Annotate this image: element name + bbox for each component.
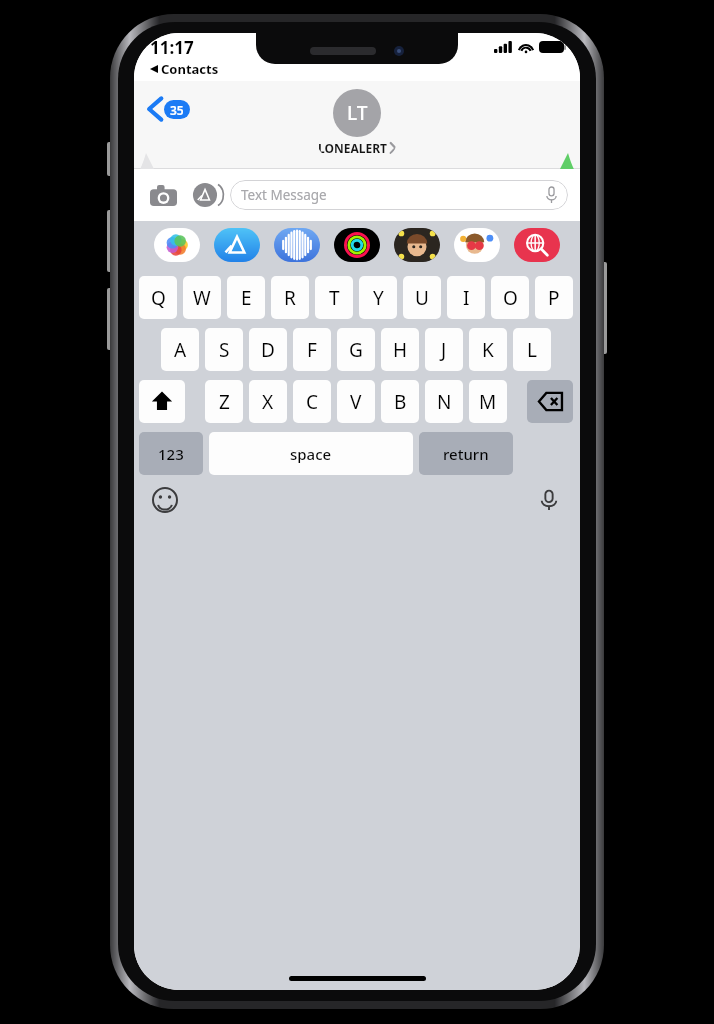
button[interactable]: C [293, 380, 331, 423]
staticText: 123 [158, 444, 184, 464]
staticText: G [349, 337, 363, 363]
staticText: Y [373, 285, 384, 311]
button[interactable]: App Store [214, 228, 260, 262]
button[interactable]: V [337, 380, 375, 423]
button[interactable]: S [205, 328, 243, 371]
staticText: N [437, 389, 452, 415]
staticText: H [393, 337, 408, 363]
button[interactable]: Back to conversations, 35 unread [146, 95, 192, 123]
button[interactable]: G [337, 328, 375, 371]
staticText: U [415, 285, 429, 311]
button[interactable]: K [469, 328, 507, 371]
button[interactable]: U [403, 276, 441, 319]
staticText: 11:17 [150, 36, 194, 59]
button[interactable]: LT [318, 89, 396, 156]
staticText: M [479, 389, 497, 415]
button[interactable]: Stickers [454, 228, 500, 262]
button[interactable]: return [419, 432, 513, 475]
staticText: 35 [170, 102, 184, 118]
button[interactable]: Shift [139, 380, 185, 423]
staticText: R [284, 285, 296, 311]
staticText: T [329, 285, 340, 311]
staticText: LONEALERT [318, 140, 387, 156]
button[interactable]: App Store [188, 178, 222, 212]
staticText: D [261, 337, 275, 363]
button[interactable]: Backspace [527, 380, 573, 423]
staticText: Contacts [161, 60, 219, 78]
button[interactable]: B [381, 380, 419, 423]
staticText: O [503, 285, 518, 311]
staticText: E [241, 285, 252, 311]
button[interactable]: H [381, 328, 419, 371]
staticText: A [174, 337, 187, 363]
staticText: B [394, 389, 407, 415]
button[interactable]: Memoji [394, 228, 440, 262]
staticText: C [306, 389, 319, 415]
button[interactable]: Emoji keyboard [152, 487, 178, 513]
staticText: J [441, 337, 447, 363]
button[interactable]: Text Message [230, 180, 568, 210]
button[interactable]: D [249, 328, 287, 371]
staticText: X [262, 389, 274, 415]
staticText: return [443, 444, 489, 464]
staticText: Q [151, 285, 166, 311]
staticText: space [290, 444, 332, 464]
button[interactable]: O [491, 276, 529, 319]
button[interactable]: Activity [334, 228, 380, 262]
button[interactable]: Photos [154, 228, 200, 262]
staticText: P [548, 285, 560, 311]
button[interactable]: X [249, 380, 287, 423]
button[interactable]: L [513, 328, 551, 371]
button[interactable]: R [271, 276, 309, 319]
button[interactable]: P [535, 276, 573, 319]
button[interactable]: Audio message [274, 228, 320, 262]
button[interactable]: 123 [139, 432, 203, 475]
staticText: K [482, 337, 494, 363]
staticText: S [219, 337, 230, 363]
staticText: Text Message [241, 186, 327, 204]
button[interactable]: space [209, 432, 413, 475]
button[interactable]: Camera [146, 178, 180, 212]
button[interactable]: Z [205, 380, 243, 423]
button[interactable]: T [315, 276, 353, 319]
button[interactable]: Image search [514, 228, 560, 262]
button[interactable]: M [469, 380, 507, 423]
staticText: L [527, 337, 537, 363]
button[interactable]: Q [139, 276, 177, 319]
staticText: I [463, 285, 470, 311]
button[interactable]: Dictation [536, 487, 562, 513]
staticText: W [193, 285, 211, 311]
staticText: LT [347, 100, 368, 126]
staticText: F [307, 337, 317, 363]
button[interactable]: F [293, 328, 331, 371]
button[interactable]: W [183, 276, 221, 319]
button[interactable]: J [425, 328, 463, 371]
button[interactable]: Y [359, 276, 397, 319]
button[interactable]: E [227, 276, 265, 319]
button[interactable]: I [447, 276, 485, 319]
staticText: Z [219, 389, 230, 415]
button[interactable]: N [425, 380, 463, 423]
button[interactable]: A [161, 328, 199, 371]
staticText: V [350, 389, 362, 415]
